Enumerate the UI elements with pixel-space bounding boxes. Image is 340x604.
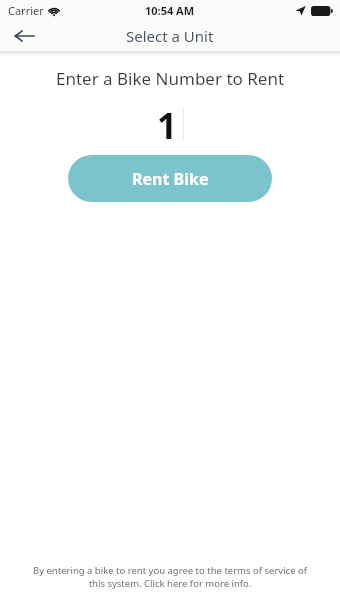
button[interactable]: 1 [0, 102, 340, 146]
staticText: Select a Unit [126, 26, 214, 46]
button[interactable]: Rent Bike [68, 155, 272, 202]
button[interactable]: Back [8, 21, 40, 51]
staticText: 10:54 AM [145, 3, 195, 18]
staticText: Enter a Bike Number to Rent [0, 67, 340, 90]
staticText: 1 [157, 102, 178, 146]
button[interactable]: By entering a bike to rent you agree to … [24, 564, 316, 604]
staticText: Carrier [8, 3, 44, 18]
staticText: By entering a bike to rent you agree to … [24, 564, 316, 590]
staticText: Rent Bike [132, 168, 209, 190]
